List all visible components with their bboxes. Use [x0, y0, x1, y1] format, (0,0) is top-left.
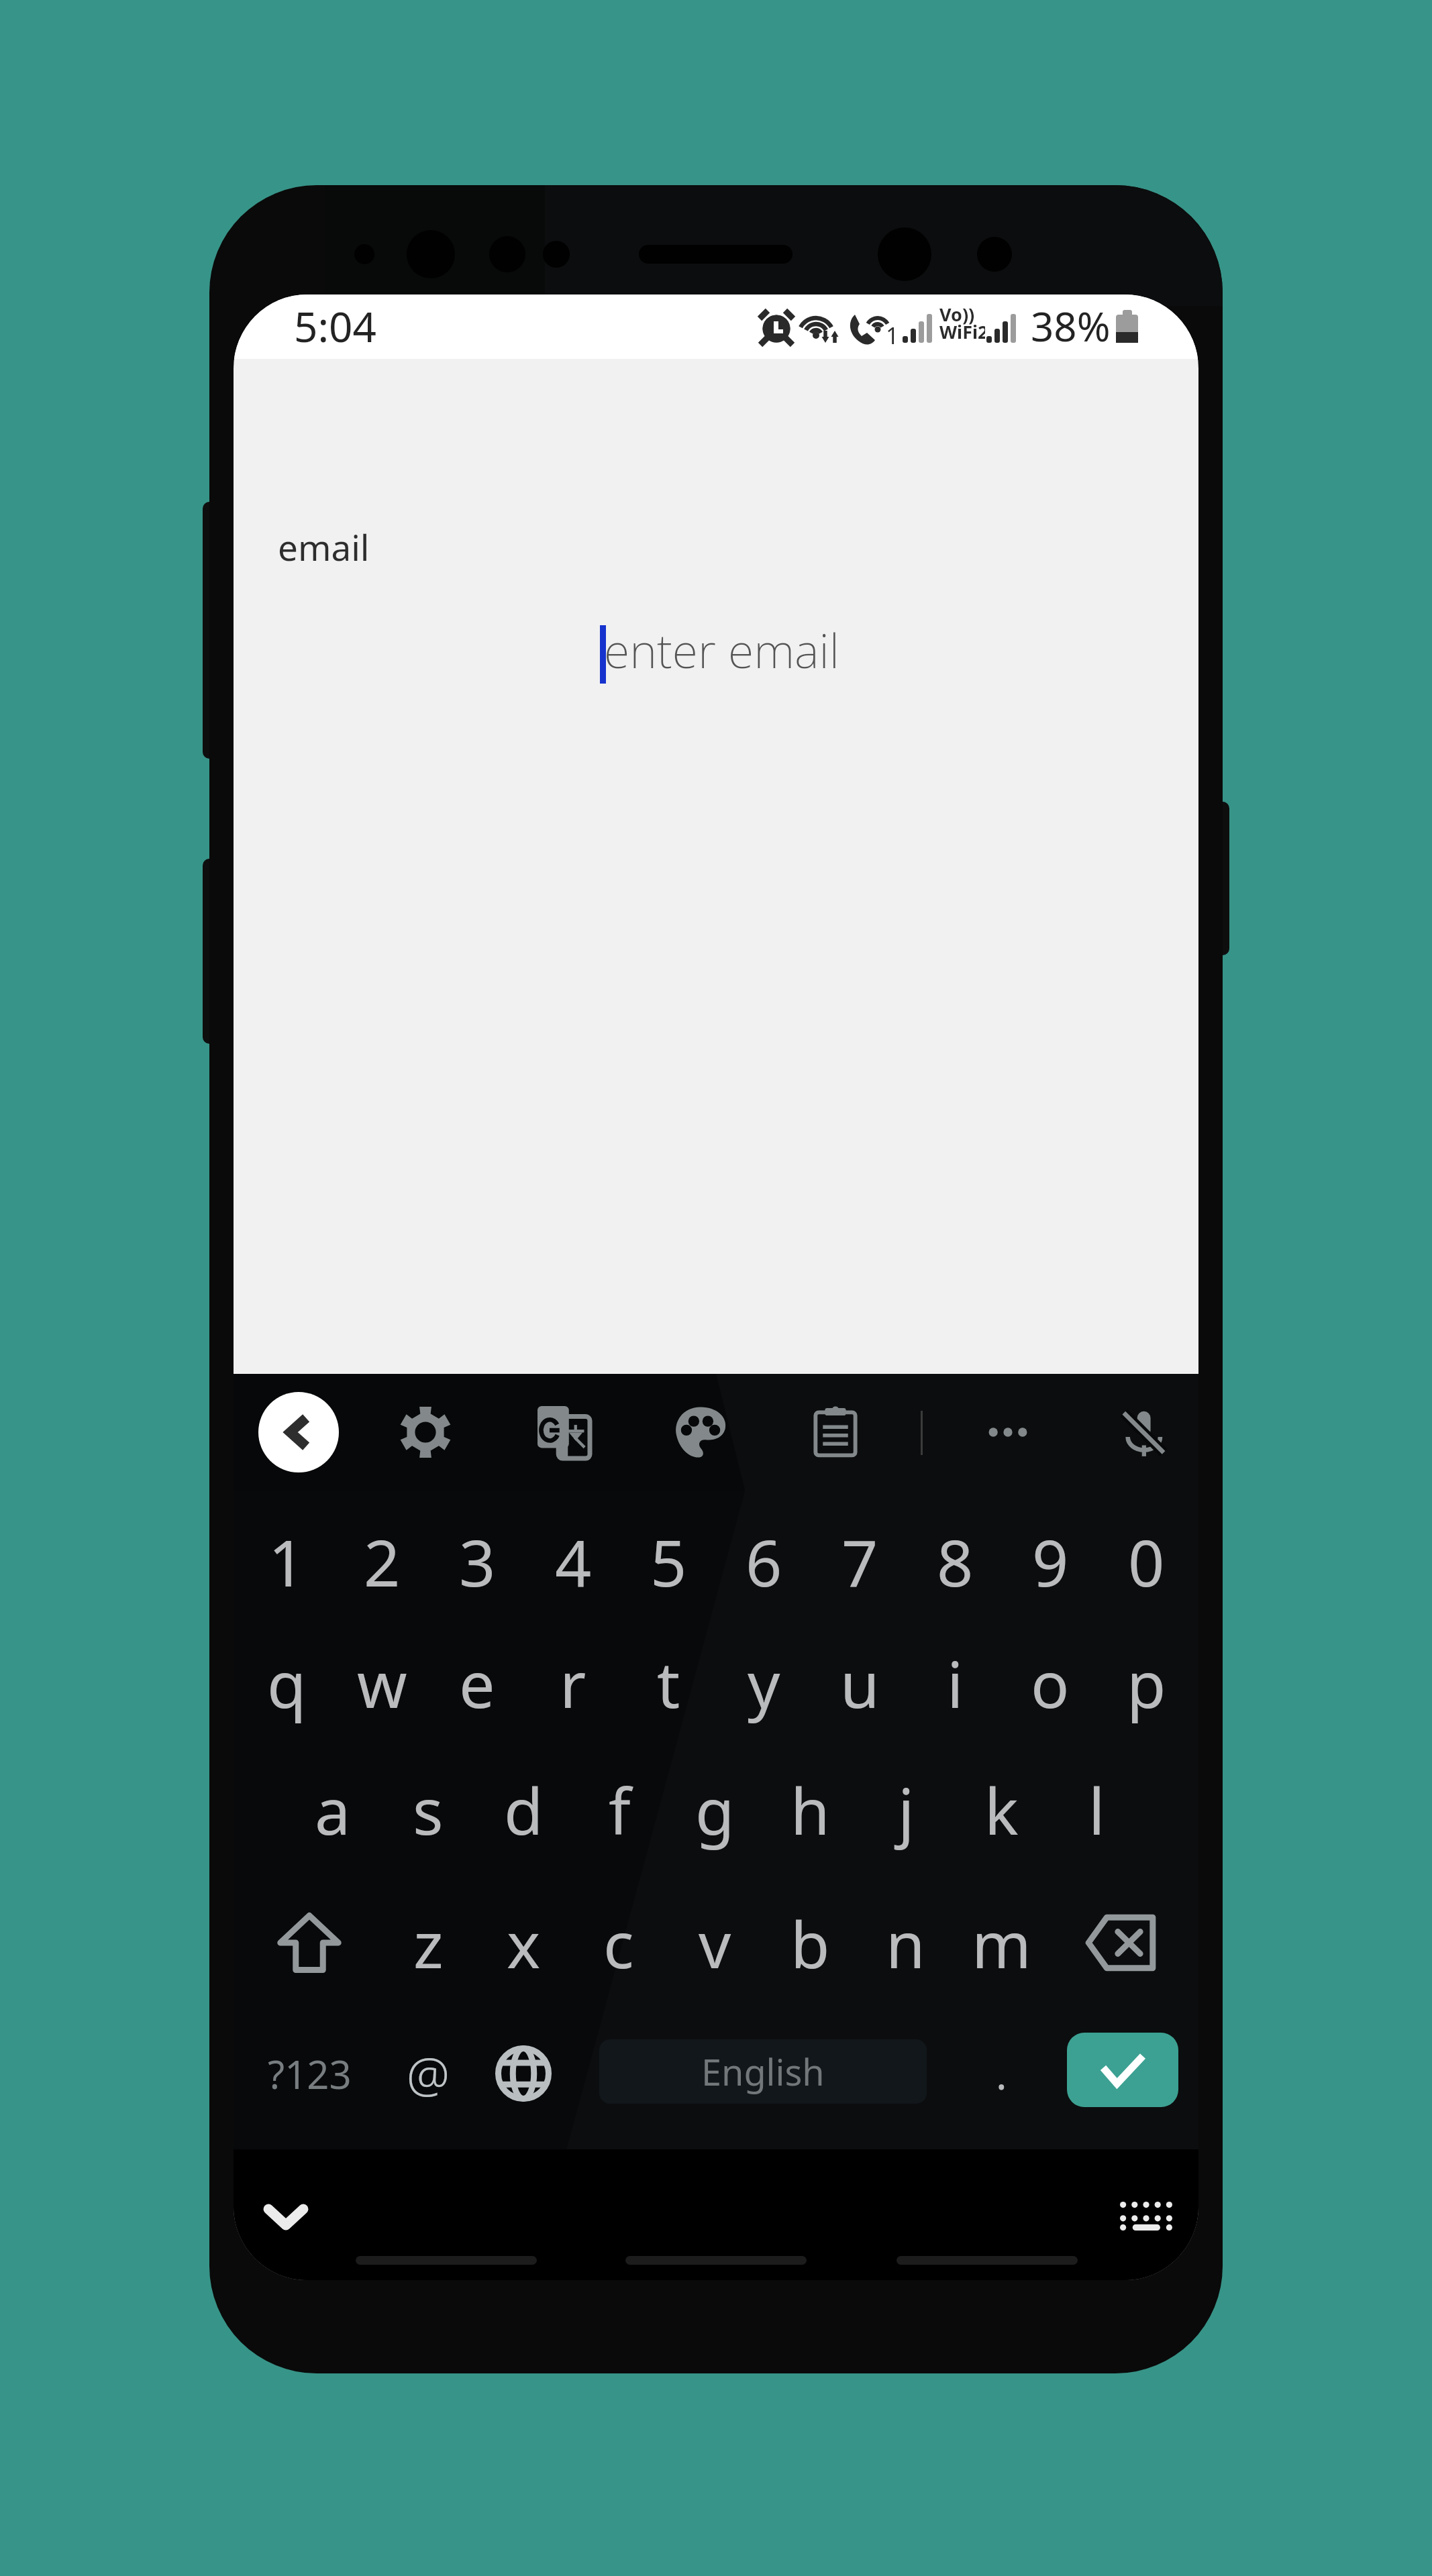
button[interactable]: 0 [1098, 1497, 1194, 1625]
button[interactable]: v [667, 1879, 762, 2006]
staticText: a [315, 1766, 351, 1853]
button[interactable]: f [572, 1746, 667, 1873]
staticText: m [972, 1900, 1031, 1986]
staticText: @ [407, 2041, 450, 2106]
staticText: u [840, 1640, 880, 1726]
staticText: c [603, 1900, 634, 1986]
staticText: n [886, 1900, 925, 1986]
staticText: q [267, 1640, 307, 1726]
button[interactable]: 9 [1003, 1497, 1098, 1625]
staticText: x [507, 1900, 541, 1986]
button[interactable]: r [525, 1619, 621, 1746]
staticText: z [413, 1900, 444, 1986]
button[interactable]: i [907, 1619, 1003, 1746]
staticText: i [947, 1640, 964, 1726]
staticText: 3 [459, 1518, 496, 1605]
button[interactable]: l [1049, 1746, 1144, 1873]
button[interactable]: 2 [334, 1497, 429, 1625]
staticText: 4 [555, 1518, 592, 1605]
button[interactable]: h [762, 1746, 858, 1873]
button[interactable]: Shift [262, 1879, 356, 2006]
staticText: ?123 [268, 2047, 352, 2100]
button[interactable]: n [858, 1879, 953, 2006]
staticText: j [898, 1766, 915, 1853]
button[interactable]: x [476, 1879, 571, 2006]
staticText: 5 [650, 1518, 687, 1605]
button[interactable]: k [954, 1746, 1049, 1873]
staticText: s [413, 1766, 444, 1853]
button[interactable]: Back [258, 1392, 339, 1472]
staticText: 1 [268, 1518, 305, 1605]
staticText: WiFi2 [939, 319, 985, 344]
button[interactable]: Theme [660, 1392, 741, 1472]
button[interactable]: e [429, 1619, 525, 1746]
staticText: w [357, 1640, 407, 1726]
staticText: g [695, 1766, 735, 1853]
staticText: o [1031, 1640, 1070, 1726]
staticText: t [657, 1640, 680, 1726]
button[interactable]: 1 [239, 1497, 334, 1625]
button[interactable]: 5 [621, 1497, 716, 1625]
staticText: r [560, 1640, 586, 1726]
button[interactable]: t [621, 1619, 716, 1746]
button[interactable]: Backspace [1074, 1879, 1168, 2006]
staticText: 5:04 [294, 298, 377, 354]
button[interactable]: u [812, 1619, 907, 1746]
button[interactable]: 3 [429, 1497, 525, 1625]
button[interactable]: o [1003, 1619, 1098, 1746]
button[interactable]: q [239, 1619, 334, 1746]
staticText: Vo)) [939, 302, 975, 327]
button[interactable]: 4 [525, 1497, 621, 1625]
button[interactable]: b [762, 1879, 858, 2006]
staticText: English [701, 2047, 825, 2096]
staticText: l [1088, 1766, 1105, 1853]
staticText: f [609, 1766, 631, 1853]
button[interactable]: y [716, 1619, 811, 1746]
button[interactable]: ?123 [262, 2010, 356, 2137]
button[interactable]: Enter [1067, 2033, 1178, 2107]
button[interactable]: 6 [716, 1497, 811, 1625]
button[interactable]: s [380, 1746, 476, 1873]
button[interactable]: Switch input method [1106, 2176, 1186, 2256]
button[interactable]: a [285, 1746, 380, 1873]
button[interactable]: z [380, 1879, 476, 2006]
staticText: email [278, 523, 370, 571]
staticText: 6 [746, 1518, 782, 1605]
staticText: . [996, 2045, 1007, 2102]
button[interactable]: @ [381, 2010, 475, 2137]
staticText: y [748, 1640, 780, 1726]
button[interactable]: Change keyboard language [476, 2010, 570, 2137]
button[interactable]: Voice input off [1105, 1392, 1185, 1472]
button[interactable]: 7 [812, 1497, 907, 1625]
staticText: e [459, 1640, 495, 1726]
button[interactable]: m [954, 1879, 1049, 2006]
button[interactable]: c [571, 1879, 666, 2006]
button[interactable]: g [667, 1746, 762, 1873]
staticText: enter email [604, 618, 839, 682]
staticText: h [790, 1766, 830, 1853]
staticText: 9 [1032, 1518, 1069, 1605]
button[interactable]: p [1098, 1619, 1194, 1746]
button[interactable]: j [858, 1746, 954, 1873]
staticText: v [699, 1900, 731, 1986]
staticText: 2 [364, 1518, 401, 1605]
button[interactable]: 8 [907, 1497, 1003, 1625]
button[interactable]: w [334, 1619, 429, 1746]
button[interactable]: English [599, 2039, 927, 2104]
button[interactable]: . [954, 2010, 1048, 2137]
staticText: 0 [1128, 1518, 1165, 1605]
staticText: d [504, 1766, 544, 1853]
button[interactable]: Clipboard [795, 1392, 876, 1472]
staticText: 8 [937, 1518, 974, 1605]
staticText: 7 [841, 1518, 878, 1605]
staticText: k [984, 1766, 1019, 1853]
button[interactable]: Translate [523, 1392, 604, 1472]
button[interactable]: More options [968, 1392, 1048, 1472]
staticText: 1 [886, 320, 899, 351]
button[interactable]: Settings [385, 1392, 466, 1472]
staticText: b [790, 1900, 830, 1986]
button[interactable]: Hide keyboard [246, 2177, 326, 2257]
button[interactable]: d [476, 1746, 571, 1873]
staticText: 38% [1031, 299, 1111, 354]
button[interactable]: enter email [596, 610, 837, 688]
